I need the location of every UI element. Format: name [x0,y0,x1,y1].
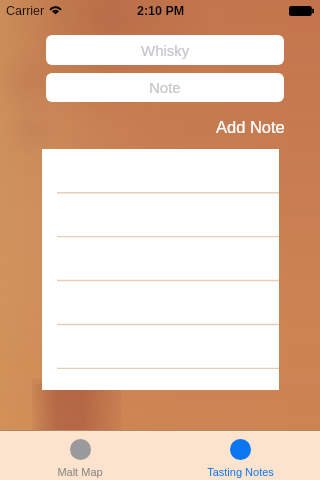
button[interactable] [42,149,279,390]
other: Malt Map [70,439,91,460]
button[interactable]: Add Note [201,114,300,140]
staticText: Tasting Notes [207,466,274,478]
staticText: Carrier [6,4,45,18]
button[interactable]: Note [46,73,284,102]
staticText: Note [149,79,181,96]
button[interactable]: Tasting Notes [160,431,320,480]
staticText: 2:10 PM [137,4,185,18]
other: Tasting Notes [230,439,251,460]
staticText: Add Note [216,118,285,136]
button[interactable]: Whisky [46,35,284,65]
staticText: Malt Map [57,466,103,478]
button[interactable]: Malt Map [0,431,160,480]
staticText: Whisky [141,42,190,59]
other: Wi-Fi signal [49,5,62,14]
